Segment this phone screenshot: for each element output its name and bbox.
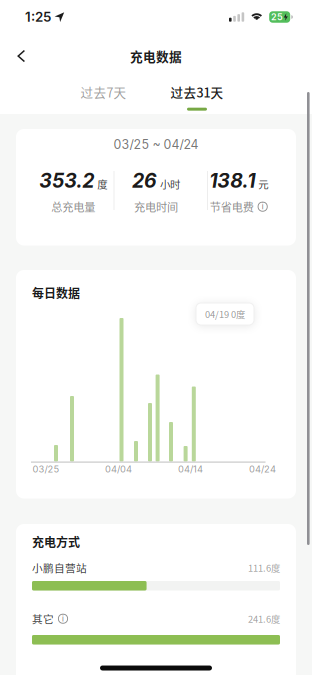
staticText: 03/25 ~ 04/24 [113,137,198,152]
button[interactable]: i [58,614,68,624]
staticText: 26 [132,169,157,193]
staticText: 04/24 [249,463,276,475]
staticText: i [62,614,64,623]
staticText: 每日数据 [32,284,80,301]
staticText: 241.6度 [248,612,280,625]
staticText: 小鹏自营站 [32,560,87,575]
staticText: 1:25 [25,9,51,25]
staticText: 小时 [160,176,180,192]
staticText: 度 [97,176,107,192]
staticText: 总充电量 [51,199,95,215]
button[interactable]: 过去7天 [80,83,126,111]
staticText: 04/04 [105,463,132,475]
staticText: 111.6度 [248,561,280,574]
staticText: 25 [271,11,283,22]
button[interactable]: i [258,202,268,212]
staticText: 其它 [32,611,54,626]
staticText: 04/14 [178,463,203,475]
staticText: 充电数据 [130,47,182,65]
staticText: 充电时间 [134,199,178,215]
staticText: i [262,202,264,211]
staticText: 138.1 [209,169,255,193]
staticText: 04/19 0度 [205,307,245,321]
staticText: 过去7天 [80,83,126,101]
staticText: 过去31天 [170,83,223,101]
staticText: 节省电费 [210,199,254,215]
button[interactable] [0,34,36,78]
button[interactable]: 过去31天 [170,83,223,111]
staticText: 03/25 [32,463,59,475]
staticText: 元 [258,176,268,192]
staticText: 充电方式 [32,533,80,550]
staticText: 353.2 [39,169,94,193]
